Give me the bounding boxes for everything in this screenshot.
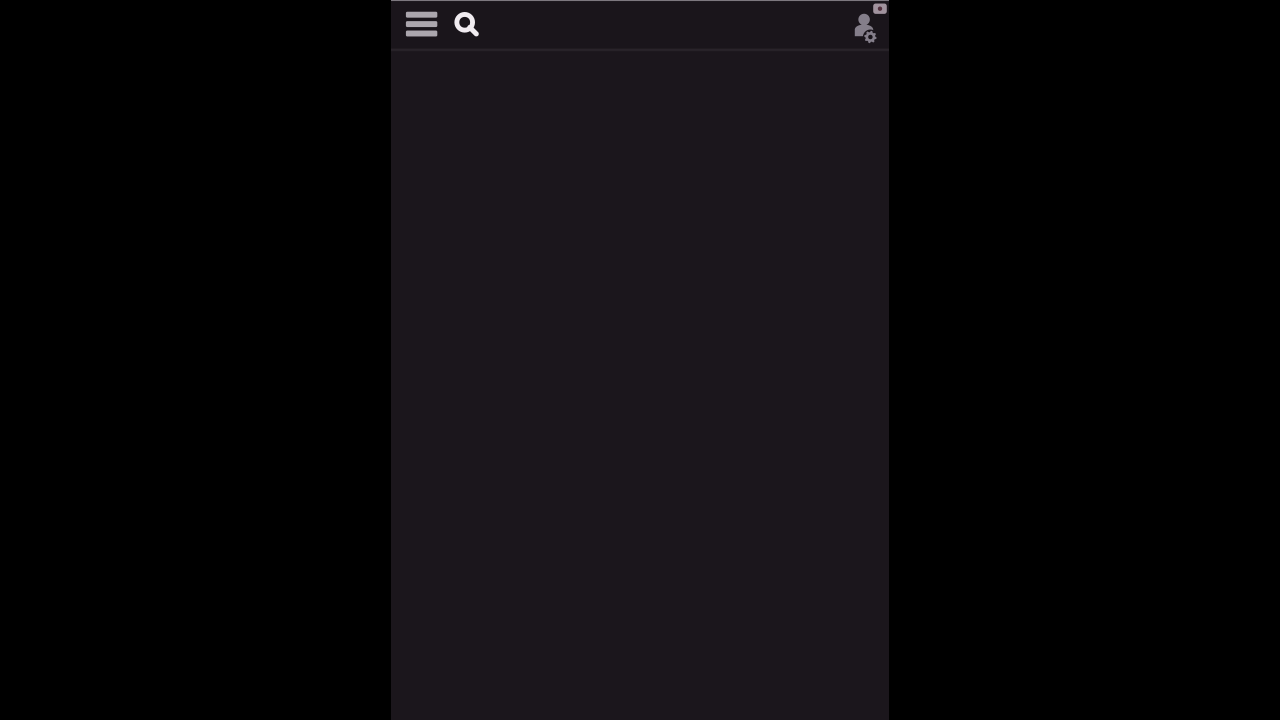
button[interactable]: Search (445, 1, 489, 48)
button[interactable]: Account settings (846, 5, 886, 52)
button[interactable]: Menu (400, 0, 444, 48)
